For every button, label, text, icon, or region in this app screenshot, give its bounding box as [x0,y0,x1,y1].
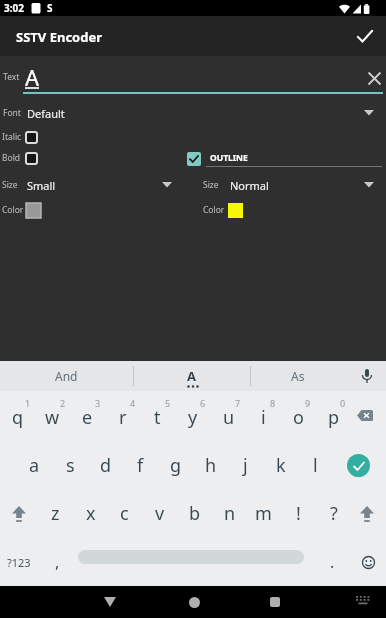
staticText: m [255,501,272,526]
staticText: Size [2,179,18,191]
staticText: Color [203,204,225,216]
button[interactable] [344,391,386,440]
button[interactable]: ?123 [0,538,38,586]
button[interactable]: f [123,441,158,490]
button[interactable] [0,489,38,538]
button[interactable]: k [263,441,298,490]
button[interactable] [351,538,386,586]
button[interactable] [25,152,38,165]
staticText: h [205,453,217,478]
button[interactable]: r [105,393,140,442]
staticText: q [12,405,24,430]
button[interactable]: z [38,489,73,538]
staticText: l [313,453,318,478]
button[interactable] [25,131,38,144]
button[interactable] [23,173,175,197]
button[interactable]: c [107,489,142,538]
staticText: 7 [235,397,241,409]
button[interactable]: j [228,441,263,490]
button[interactable] [348,489,386,538]
staticText: As [291,368,305,384]
button[interactable] [187,152,201,166]
staticText: Default [27,106,65,121]
button[interactable] [23,101,383,125]
button[interactable]: p [316,393,351,442]
staticText: And [55,368,78,384]
button[interactable]: As [250,361,345,391]
staticText: u [223,405,235,430]
button[interactable] [352,592,374,610]
button[interactable]: s [53,441,88,490]
button[interactable] [95,587,125,617]
button[interactable] [226,173,383,197]
staticText: x [86,501,96,526]
staticText: 3:02 [4,1,24,15]
staticText: j [243,453,248,478]
staticText: v [155,501,165,526]
staticText: S [47,1,53,15]
staticText: 4 [130,397,136,409]
staticText: SSTV Encoder [16,28,103,46]
staticText: 6 [200,397,206,409]
staticText: OUTLINE [210,152,248,164]
button[interactable]: ? [316,489,351,538]
button[interactable] [335,442,381,488]
button[interactable]: v [142,489,177,538]
button[interactable]: b [177,489,212,538]
staticText: 5 [165,397,171,409]
staticText: . [330,551,335,573]
button[interactable]: u [211,393,246,442]
staticText: Normal [230,178,269,193]
staticText: t [154,405,161,430]
button[interactable]: l [298,441,333,490]
staticText: f [137,453,144,478]
button[interactable]: y [175,393,210,442]
staticText: b [189,501,201,526]
button[interactable]: d [88,441,123,490]
staticText: Bold [2,152,21,164]
staticText: k [276,453,286,478]
staticText: c [120,501,129,526]
staticText: a [29,453,40,478]
staticText: Small [27,178,56,193]
staticText: 8 [270,397,276,409]
button[interactable]: ! [281,489,316,538]
button[interactable]: x [73,489,108,538]
button[interactable] [364,68,384,88]
button[interactable]: A [133,361,250,391]
button[interactable] [260,587,290,617]
button[interactable]: w [35,393,70,442]
button[interactable]: t [140,393,175,442]
staticText: ? [330,501,338,526]
staticText: Size [203,179,219,191]
button[interactable] [26,203,41,218]
button[interactable]: o [281,393,316,442]
staticText: A [25,62,40,90]
button[interactable]: n [212,489,247,538]
staticText: r [119,405,127,430]
button[interactable]: And [0,361,133,391]
button[interactable]: , [38,538,76,586]
button[interactable]: q [0,393,35,442]
button[interactable]: a [17,441,52,490]
staticText: , [55,551,60,573]
button[interactable]: . [313,538,351,586]
button[interactable]: h [193,441,228,490]
button[interactable] [355,364,379,388]
button[interactable]: m [246,489,281,538]
staticText: ?123 [7,555,31,570]
staticText: Italic [2,131,22,143]
button[interactable] [179,587,209,617]
button[interactable] [350,21,380,51]
staticText: 1 [25,397,31,409]
staticText: o [293,405,304,430]
staticText: g [170,453,182,478]
button[interactable]: i [246,393,281,442]
staticText: n [224,501,236,526]
button[interactable]: g [158,441,193,490]
staticText: y [188,405,198,430]
staticText: z [51,501,60,526]
button[interactable]: e [70,393,105,442]
